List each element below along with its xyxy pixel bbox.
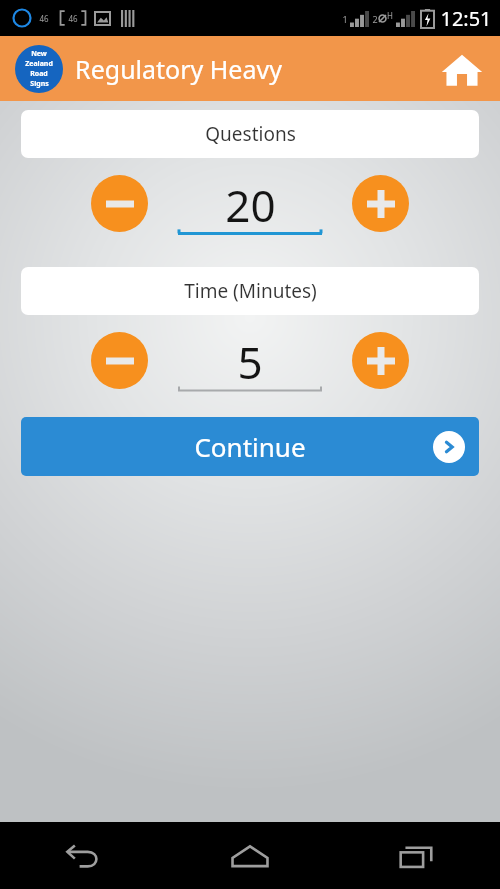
staticText: 46 [68, 13, 78, 24]
staticText: 12:51 [440, 5, 492, 32]
button[interactable]: Questions [21, 110, 479, 158]
staticText: Zealand [25, 59, 53, 69]
button[interactable]: Recent apps [333, 822, 500, 889]
button[interactable]: Increase [352, 175, 409, 232]
staticText: Road [30, 69, 48, 79]
staticText: New [31, 49, 47, 59]
button[interactable]: Increase [352, 332, 409, 389]
staticText: H [387, 10, 393, 21]
button[interactable]: Decrease [91, 175, 148, 232]
staticText: Time (Minutes) [184, 278, 317, 304]
button[interactable]: Home [434, 41, 490, 97]
staticText: 1 [342, 13, 348, 25]
staticText: Questions [205, 121, 296, 147]
staticText: Signs [30, 79, 49, 89]
staticText: 5 [237, 332, 263, 386]
staticText: 20 [225, 175, 276, 229]
staticText: Continue [194, 429, 306, 464]
button[interactable]: Decrease [91, 332, 148, 389]
staticText: 46 [39, 13, 49, 24]
staticText: 2 [372, 13, 378, 25]
button[interactable]: Home [166, 822, 333, 889]
button[interactable]: Continue [21, 417, 479, 476]
button[interactable]: Time (Minutes) [21, 267, 479, 315]
button[interactable]: New Zealand Road Signs logo [15, 45, 63, 93]
staticText: Regulatory Heavy [75, 52, 282, 86]
button[interactable]: Back [0, 822, 166, 889]
